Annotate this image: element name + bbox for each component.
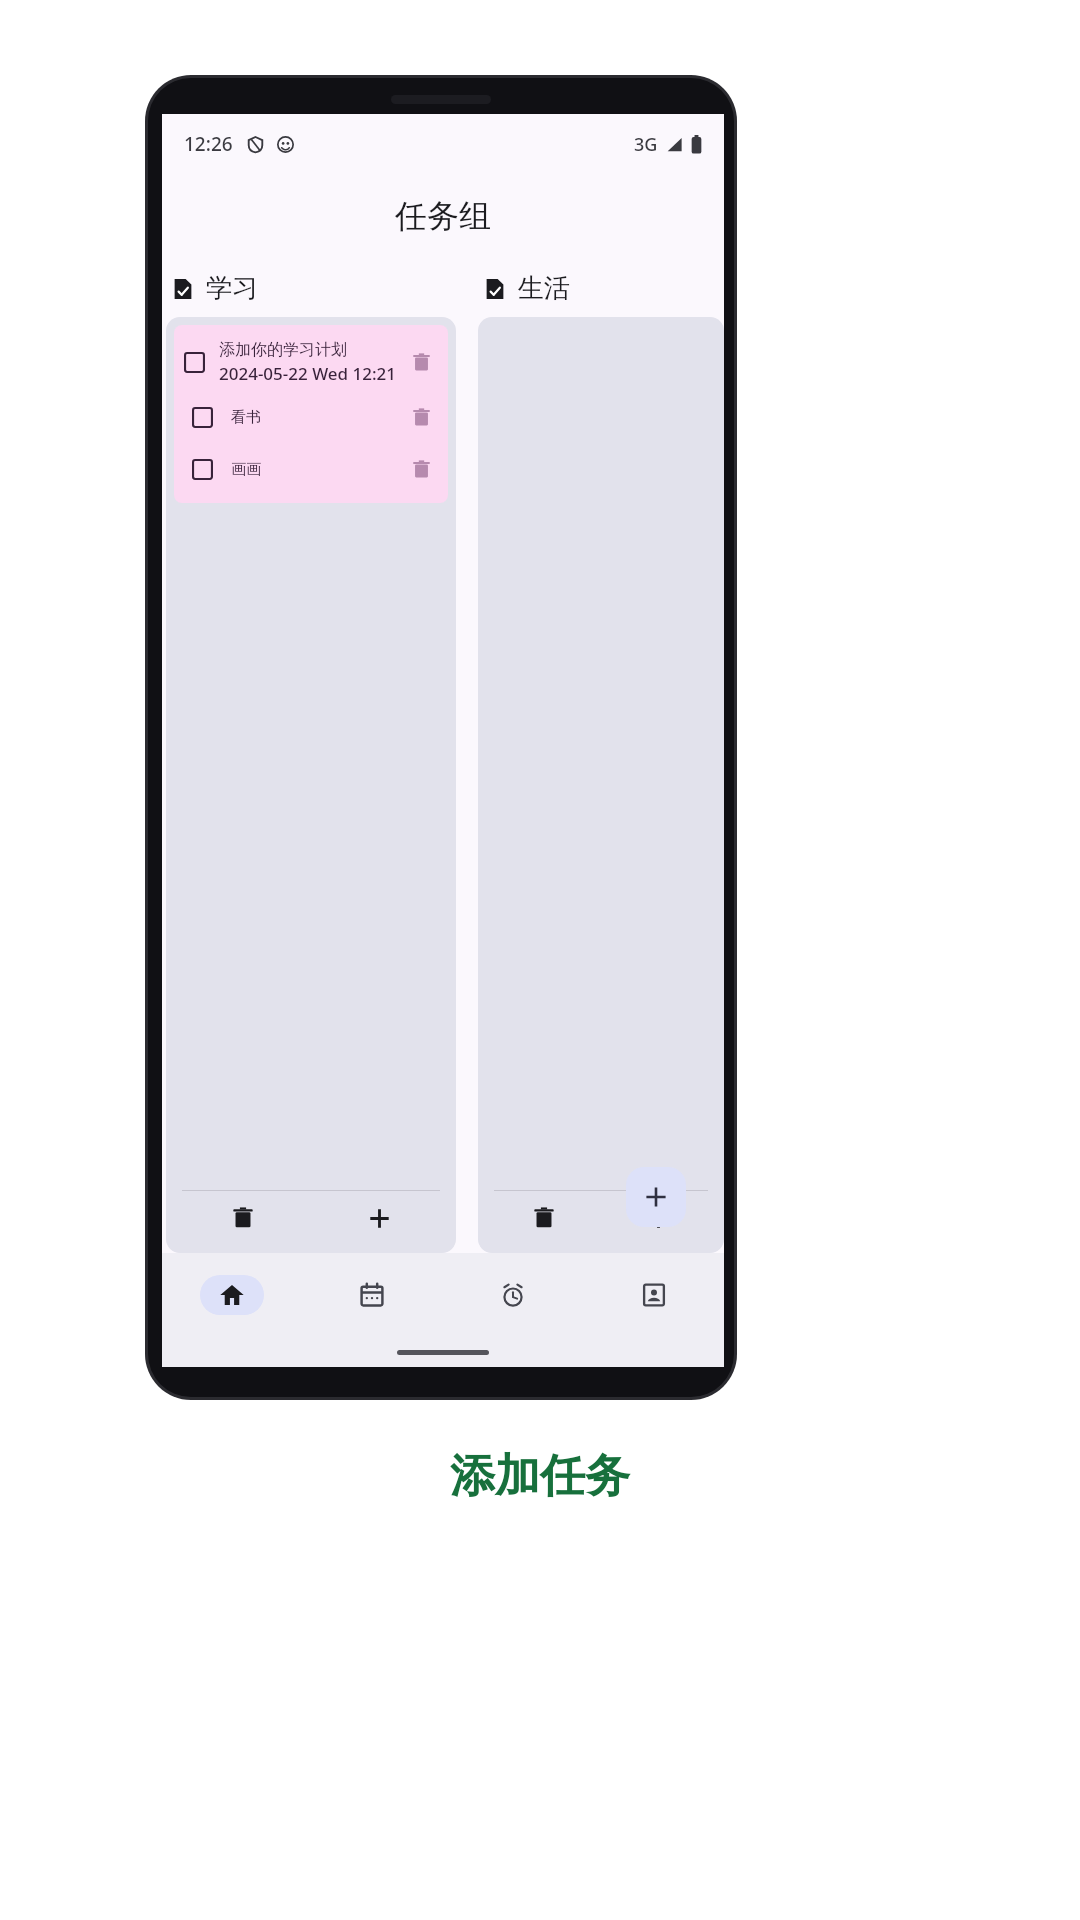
button[interactable]: Toggle 画画 bbox=[192, 459, 213, 480]
button[interactable]: Delete 添加你的学习计划 bbox=[406, 347, 436, 377]
staticText: 任务组 bbox=[395, 196, 491, 236]
staticText: 添加任务 bbox=[0, 1448, 1080, 1505]
button[interactable]: Calendar bbox=[302, 1253, 442, 1337]
button[interactable]: Delete 看书 bbox=[406, 402, 436, 432]
button[interactable]: Toggle 画画 bbox=[174, 443, 448, 495]
button[interactable]: Toggle 看书 bbox=[174, 391, 448, 443]
button[interactable]: 生活 bbox=[484, 272, 570, 305]
button[interactable]: Add task bbox=[311, 1191, 448, 1245]
button[interactable]: Toggle 添加你的学习计划 bbox=[184, 352, 205, 373]
button[interactable]: 学习 bbox=[172, 272, 258, 305]
staticText: 看书 bbox=[231, 408, 261, 427]
button[interactable]: Add task bbox=[601, 1191, 716, 1245]
staticText: 2024-05-22 Wed 12:21 bbox=[219, 362, 397, 385]
staticText: 12:26 bbox=[184, 131, 233, 157]
button[interactable]: Toggle 看书 bbox=[192, 407, 213, 428]
button[interactable]: Delete 画画 bbox=[406, 454, 436, 484]
button[interactable]: Toggle 添加你的学习计划 bbox=[174, 333, 448, 391]
button[interactable]: Profile bbox=[583, 1253, 724, 1337]
staticText: 画画 bbox=[231, 460, 261, 479]
button[interactable]: Delete group bbox=[486, 1191, 601, 1245]
button[interactable]: Alarm bbox=[442, 1253, 583, 1337]
button[interactable]: Add task group bbox=[626, 1167, 686, 1227]
staticText: 3G bbox=[634, 132, 658, 157]
staticText: 学习 bbox=[206, 272, 258, 305]
button[interactable]: Home bbox=[162, 1253, 302, 1337]
button[interactable]: Delete group bbox=[174, 1191, 311, 1245]
staticText: 生活 bbox=[518, 272, 570, 305]
staticText: 添加你的学习计划 bbox=[219, 340, 347, 360]
